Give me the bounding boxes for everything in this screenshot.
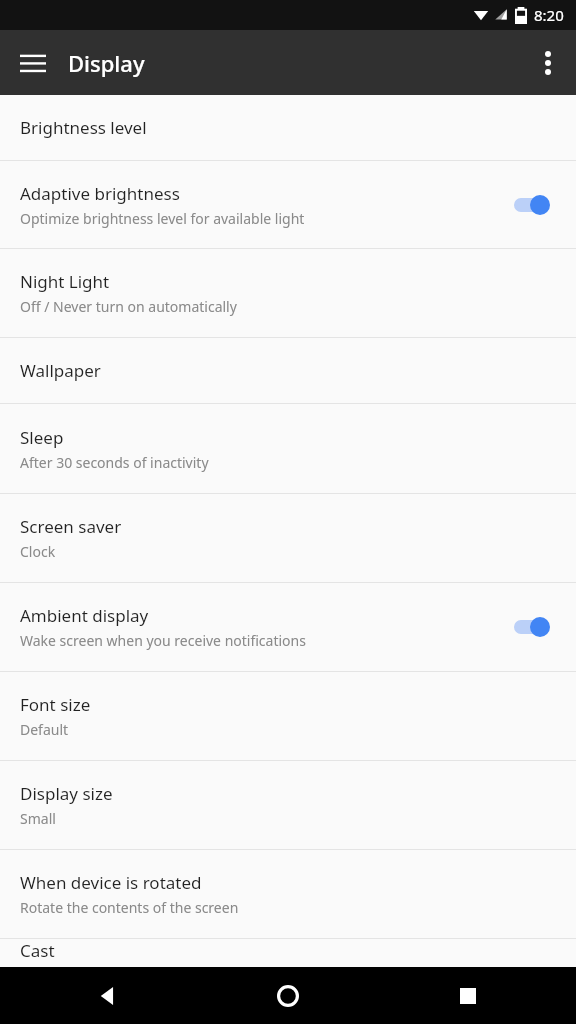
staticText: 8:20 (534, 5, 564, 25)
staticText: Adaptive brightness (20, 182, 180, 205)
button[interactable]: Night Light (0, 249, 576, 337)
staticText: Off / Never turn on automatically (20, 297, 237, 316)
button[interactable]: Wallpaper (0, 338, 576, 403)
staticText: Screen saver (20, 515, 122, 538)
staticText: Brightness level (20, 116, 147, 139)
button[interactable]: When device is rotated (0, 850, 576, 938)
button[interactable]: Open navigation drawer (0, 30, 66, 95)
staticText: Wake screen when you receive notificatio… (20, 631, 306, 650)
button[interactable]: Font size (0, 672, 576, 760)
staticText: Optimize brightness level for available … (20, 209, 305, 228)
button[interactable]: Screen saver (0, 494, 576, 582)
staticText: Font size (20, 693, 91, 716)
staticText: Display (68, 48, 145, 78)
staticText: Default (20, 720, 69, 739)
staticText: Wallpaper (20, 359, 101, 382)
button[interactable]: Ambient display (0, 583, 576, 671)
staticText: Clock (20, 542, 56, 561)
button[interactable]: Recent apps (438, 967, 498, 1024)
button[interactable]: Toggle Adaptive brightness (508, 187, 560, 223)
staticText: Ambient display (20, 604, 149, 627)
staticText: After 30 seconds of inactivity (20, 453, 209, 472)
staticText: Night Light (20, 270, 110, 293)
button[interactable]: More options (520, 35, 576, 91)
staticText: Display size (20, 782, 113, 805)
staticText: Rotate the contents of the screen (20, 898, 239, 917)
staticText: Small (20, 809, 56, 828)
staticText: Sleep (20, 426, 64, 449)
button[interactable]: Back (78, 967, 138, 1024)
button[interactable]: Cast (0, 939, 576, 967)
staticText: When device is rotated (20, 871, 202, 894)
button[interactable]: Home (258, 967, 318, 1024)
button[interactable]: Adaptive brightness (0, 161, 576, 248)
button[interactable]: Sleep (0, 404, 576, 493)
button[interactable]: Toggle Ambient display (508, 609, 560, 645)
staticText: Cast (20, 939, 55, 962)
button[interactable]: Display size (0, 761, 576, 849)
button[interactable]: Brightness level (0, 95, 576, 160)
